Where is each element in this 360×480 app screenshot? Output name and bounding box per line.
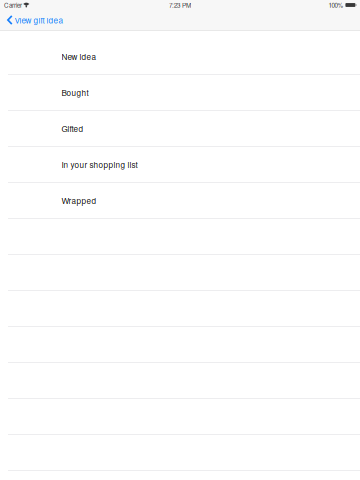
button[interactable]: Wrapped [0,183,360,219]
button[interactable]: In your shopping list [0,147,360,183]
button[interactable]: New idea [0,39,360,75]
staticText: In your shopping list [61,159,137,170]
button[interactable]: View gift idea [0,10,69,30]
staticText: View gift idea [14,14,63,26]
staticText: 7:23 PM [169,0,191,9]
staticText: New idea [61,51,96,62]
staticText: Gifted [61,123,83,134]
staticText: Carrier [4,0,22,9]
button[interactable]: Gifted [0,111,360,147]
staticText: Bought [61,87,88,98]
button[interactable]: Bought [0,75,360,111]
staticText: 100% [328,0,343,9]
staticText: Wrapped [61,195,96,206]
